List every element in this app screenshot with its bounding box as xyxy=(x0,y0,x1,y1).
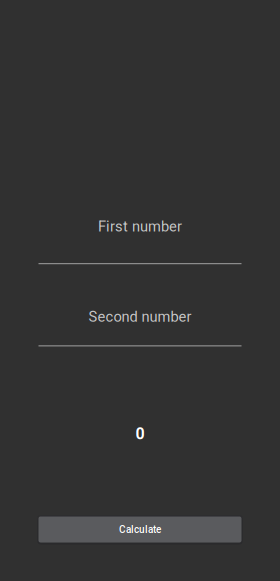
staticText: 0 xyxy=(135,424,144,443)
staticText: First number xyxy=(98,218,182,235)
staticText: Second number xyxy=(88,308,191,325)
button[interactable]: Calculate xyxy=(37,515,243,544)
staticText: Calculate xyxy=(119,524,161,535)
